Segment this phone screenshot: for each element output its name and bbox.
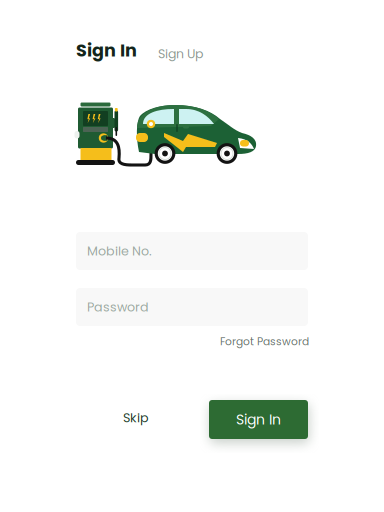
button[interactable]: Sign In bbox=[209, 400, 308, 439]
staticText: Mobile No. bbox=[87, 242, 152, 260]
button[interactable]: Skip bbox=[123, 409, 149, 427]
button[interactable]: Sign Up bbox=[158, 45, 203, 63]
button[interactable]: Mobile No. bbox=[76, 232, 308, 270]
staticText: Sign In bbox=[236, 410, 281, 429]
button[interactable]: Sign In bbox=[76, 38, 137, 63]
staticText: Sign Up bbox=[158, 45, 203, 63]
staticText: Forgot Password bbox=[220, 334, 309, 349]
staticText: Skip bbox=[123, 409, 149, 427]
button[interactable]: Password bbox=[76, 288, 308, 326]
staticText: Password bbox=[87, 298, 149, 316]
staticText: Sign In bbox=[76, 38, 137, 63]
button[interactable]: Forgot Password bbox=[220, 334, 309, 349]
